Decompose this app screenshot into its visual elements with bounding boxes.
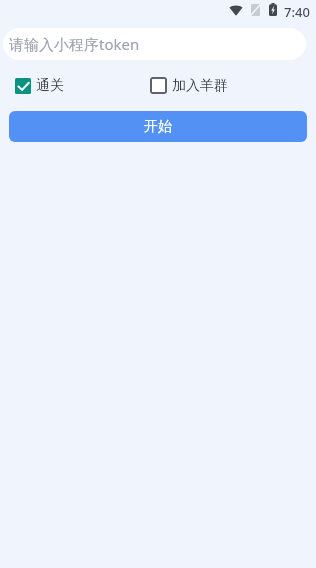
staticText: 开始 [144,118,172,136]
staticText: 7:40 [284,3,310,21]
button[interactable]: 请输入小程序token [3,28,306,60]
other: Wi-Fi [229,4,243,16]
button[interactable]: 开始 [9,111,307,142]
button[interactable]: 加入羊群 [150,77,228,94]
other: No SIM [251,4,260,16]
other: Battery charging [269,3,277,16]
staticText: 请输入小程序token [9,34,140,54]
staticText: 通关 [36,77,64,94]
staticText: 加入羊群 [172,77,228,94]
button[interactable]: 通关 [15,77,64,94]
